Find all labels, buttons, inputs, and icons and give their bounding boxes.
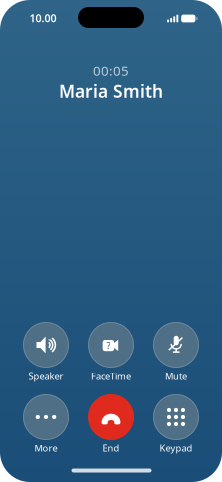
button[interactable]: Speaker [16, 322, 76, 384]
staticText: ? [106, 339, 110, 351]
button[interactable]: ? [81, 322, 141, 384]
button[interactable]: End [81, 394, 141, 456]
staticText: More [34, 442, 57, 454]
staticText: 00:05 [93, 62, 129, 79]
staticText: FaceTime [91, 370, 131, 382]
staticText: 10.00 [29, 11, 56, 25]
button[interactable]: More [16, 394, 76, 456]
staticText: Keypad [159, 442, 192, 454]
staticText: Speaker [28, 370, 63, 382]
staticText: End [102, 442, 119, 454]
staticText: Maria Smith [59, 79, 163, 102]
button[interactable]: Mute [146, 322, 206, 384]
button[interactable]: Keypad [146, 394, 206, 456]
staticText: Mute [165, 370, 187, 382]
